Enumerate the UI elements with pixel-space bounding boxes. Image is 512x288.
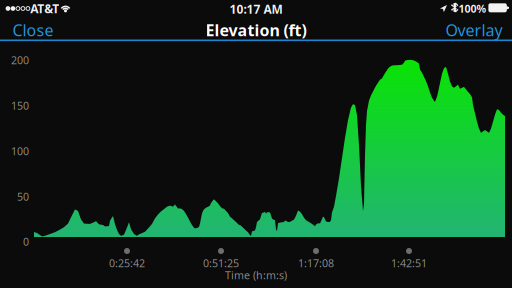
staticText: AT&T <box>30 1 59 16</box>
staticText: Overlay <box>445 19 502 41</box>
staticText: 0 <box>23 234 29 249</box>
staticText: 100% <box>458 1 486 16</box>
staticText: 0:25:42 <box>109 256 145 270</box>
staticText: Time (h:m:s) <box>225 268 287 282</box>
staticText: 0:51:25 <box>203 256 239 270</box>
staticText: 1:17:08 <box>298 256 334 270</box>
staticText: 1:42:51 <box>391 256 427 270</box>
staticText: 10:17 AM <box>229 1 282 17</box>
button[interactable]: Close <box>5 17 61 43</box>
button[interactable]: Overlay <box>443 17 505 43</box>
staticText: 200 <box>11 53 29 67</box>
staticText: 100 <box>11 144 29 158</box>
staticText: Elevation (ft) <box>205 19 306 41</box>
staticText: 50 <box>17 189 29 204</box>
staticText: Close <box>12 19 53 41</box>
staticText: 150 <box>11 98 29 113</box>
